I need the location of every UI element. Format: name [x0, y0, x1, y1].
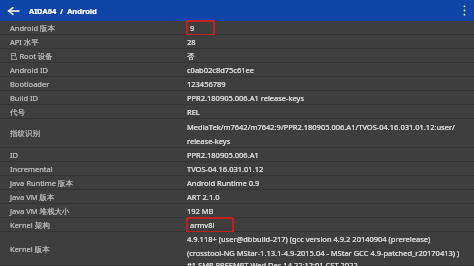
staticText: ID: [10, 150, 19, 160]
button[interactable]: ID: [0, 148, 474, 162]
button[interactable]: Java Runtime 版本: [0, 176, 474, 190]
button[interactable]: Android ID: [0, 63, 474, 77]
staticText: Java VM 堆栈大小: [10, 206, 70, 216]
staticText: Java Runtime 版本: [10, 178, 73, 188]
staticText: Bootloader: [10, 79, 50, 89]
button[interactable]: Back: [3, 0, 24, 21]
staticText: armv8l: [190, 220, 215, 230]
button[interactable]: 指纹识别: [0, 119, 474, 148]
staticText: TVOS-04.16.031.01.12: [187, 164, 264, 174]
staticText: 28: [187, 37, 196, 47]
staticText: Android 版本: [10, 23, 56, 33]
button[interactable]: Kernel 架构: [0, 218, 474, 232]
staticText: Java VM 版本: [10, 192, 55, 202]
button[interactable]: Android 版本: [0, 21, 474, 35]
button[interactable]: Kernel 版本: [0, 232, 474, 266]
staticText: Android ID: [10, 65, 49, 75]
staticText: 已 Root 设备: [10, 51, 53, 61]
staticText: Kernel 版本: [10, 244, 50, 254]
button[interactable]: Build ID: [0, 91, 474, 105]
staticText: 123456789: [187, 79, 226, 89]
staticText: 9: [190, 23, 195, 33]
button[interactable]: Java VM 版本: [0, 190, 474, 204]
staticText: Build ID: [10, 93, 38, 103]
staticText: 4.9.118+ (user@dbbuild-217) (gcc version…: [187, 234, 431, 244]
staticText: release-keys: [187, 136, 231, 146]
staticText: 否: [187, 52, 195, 61]
staticText: ART 2.1.0: [187, 192, 220, 202]
staticText: PPR2.180905.006.A1: [187, 150, 259, 160]
button[interactable]: More options: [454, 0, 474, 21]
staticText: Incremental: [10, 164, 53, 174]
button[interactable]: Bootloader: [0, 77, 474, 91]
staticText: AIDA64 / Android: [29, 6, 97, 16]
staticText: 代号: [10, 108, 25, 117]
staticText: #1 SMP PREEMPT Wed Dec 14 22:12:01 CST 2…: [187, 260, 358, 266]
staticText: 192 MB: [187, 206, 214, 216]
staticText: c0ab02c8d75c61ee: [187, 65, 255, 75]
button[interactable]: Incremental: [0, 162, 474, 176]
button[interactable]: API 水平: [0, 35, 474, 49]
staticText: MediaTek/m7642/m7642:9/PPR2.180905.006.A…: [187, 122, 455, 132]
staticText: REL: [187, 107, 200, 117]
button[interactable]: Java VM 堆栈大小: [0, 204, 474, 218]
staticText: Android Runtime 0.9: [187, 178, 260, 188]
staticText: PPR2.180905.006.A1 release-keys: [187, 93, 304, 103]
button[interactable]: 已 Root 设备: [0, 49, 474, 63]
staticText: 指纹识别: [10, 129, 40, 138]
button[interactable]: 代号: [0, 105, 474, 119]
staticText: (crosstool-NG MStar-1.13.1-4.9-2015.04 -…: [187, 248, 460, 258]
staticText: API 水平: [10, 37, 39, 47]
staticText: Kernel 架构: [10, 220, 50, 230]
